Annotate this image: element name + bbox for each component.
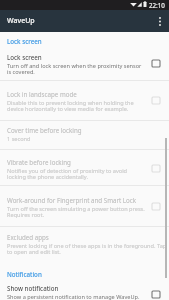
button[interactable]: Lock screen [0,51,169,75]
button[interactable]: Work-around for Fingerprint and Smart Lo… [150,200,162,212]
button[interactable]: Show notification [0,282,169,299]
staticText: Prevent locking if one of these apps is … [7,242,167,250]
staticText: 22:10 [149,1,165,9]
staticText: Work-around for Fingerprint and Smart Lo… [7,196,137,204]
staticText: Disable this to prevent locking when hol… [7,99,134,107]
button[interactable]: Lock screen [150,57,162,69]
staticText: Show a persistent notification to manage… [7,293,140,300]
staticText: is covered. [7,68,35,76]
button[interactable]: Vibrate before locking [0,156,169,180]
staticText: Lock screen [7,53,42,61]
staticText: device horizontally to view media for ex… [7,105,129,113]
staticText: Vibrate before locking [7,158,71,166]
button[interactable]: Lock in landscape mode [150,94,162,106]
staticText: to open and edit list. [7,248,61,256]
staticText: Notification [7,270,42,278]
staticText: Lock screen [7,37,42,45]
button[interactable]: Excluded apps [0,231,169,255]
staticText: Requires root. [7,211,44,219]
staticText: Turn off and lock screen when the proxim… [7,62,142,70]
button[interactable]: Lock in landscape mode [0,88,169,112]
staticText: Lock in landscape mode [7,90,77,98]
staticText: 1 second [7,135,31,143]
staticText: Cover time before locking [7,126,82,134]
button[interactable]: More options [151,12,169,30]
button[interactable]: Show notification [150,288,162,300]
button[interactable]: Cover time before locking [0,124,169,141]
button[interactable]: Work-around for Fingerprint and Smart Lo… [0,194,169,218]
button[interactable]: Vibrate before locking [150,162,162,174]
staticText: WaveUp [7,16,35,26]
staticText: Turn off the screen simulating a power b… [7,205,145,213]
staticText: Notifies you of detection of proximity t… [7,167,128,175]
staticText: locking the phone accidentally. [7,173,88,181]
staticText: Excluded apps [7,233,49,241]
staticText: Show notification [7,284,59,292]
